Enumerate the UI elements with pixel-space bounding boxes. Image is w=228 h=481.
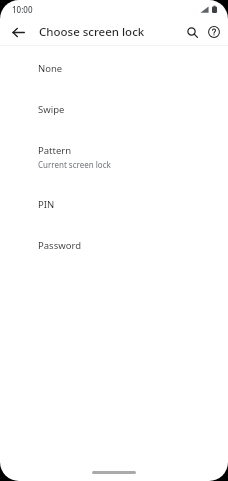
staticText: Current screen lock xyxy=(38,159,111,170)
button[interactable]: Search xyxy=(181,21,203,43)
staticText: Password xyxy=(38,239,81,252)
button[interactable]: Swipe xyxy=(0,96,228,123)
button[interactable]: Help xyxy=(203,21,225,43)
staticText: Swipe xyxy=(38,103,65,116)
staticText: Choose screen lock xyxy=(39,24,145,40)
button[interactable]: Back xyxy=(6,20,30,44)
button[interactable]: PIN xyxy=(0,191,228,218)
staticText: None xyxy=(38,62,63,75)
button[interactable]: Pattern xyxy=(0,137,228,177)
staticText: 10:00 xyxy=(12,4,33,15)
staticText: PIN xyxy=(38,198,55,211)
button[interactable]: None xyxy=(0,55,228,82)
button[interactable]: Password xyxy=(0,232,228,259)
staticText: Pattern xyxy=(38,144,72,157)
